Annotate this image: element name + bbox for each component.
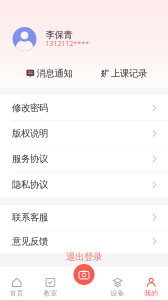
staticText: 1312112**** xyxy=(45,39,89,48)
staticText: 隐私协议 xyxy=(12,179,48,190)
button[interactable]: 消息通知 xyxy=(26,68,73,78)
button[interactable]: 首页 xyxy=(0,272,34,297)
button[interactable]: 服务协议 xyxy=(0,146,168,172)
staticText: 消息通知 xyxy=(37,68,73,79)
staticText: 设备 xyxy=(111,289,125,297)
button[interactable]: 教室 xyxy=(34,272,67,297)
staticText: 教室 xyxy=(43,289,57,297)
button[interactable]: 版权说明 xyxy=(0,121,168,146)
staticText: 退出登录 xyxy=(66,251,102,263)
button[interactable]: Scan xyxy=(73,264,94,285)
staticText: 李保青 xyxy=(45,29,72,41)
button[interactable]: 修改密码 xyxy=(0,95,168,121)
staticText: 服务协议 xyxy=(12,153,48,165)
button[interactable]: 意见反馈 xyxy=(0,230,168,252)
staticText: 我的 xyxy=(144,289,158,297)
button[interactable]: 隐私协议 xyxy=(0,172,168,197)
staticText: 修改密码 xyxy=(12,102,48,114)
staticText: 版权说明 xyxy=(12,128,48,139)
staticText: 意见反馈 xyxy=(12,236,48,247)
button[interactable]: 我的 xyxy=(134,272,168,297)
staticText: 联系客服 xyxy=(12,212,48,223)
staticText: 首页 xyxy=(10,289,24,297)
staticText: 上课记录 xyxy=(111,68,147,79)
button[interactable]: 联系客服 xyxy=(0,205,168,230)
button[interactable]: 上课记录 xyxy=(100,68,147,78)
button[interactable]: 退出登录 xyxy=(0,252,168,261)
button[interactable]: 设备 xyxy=(101,272,134,297)
